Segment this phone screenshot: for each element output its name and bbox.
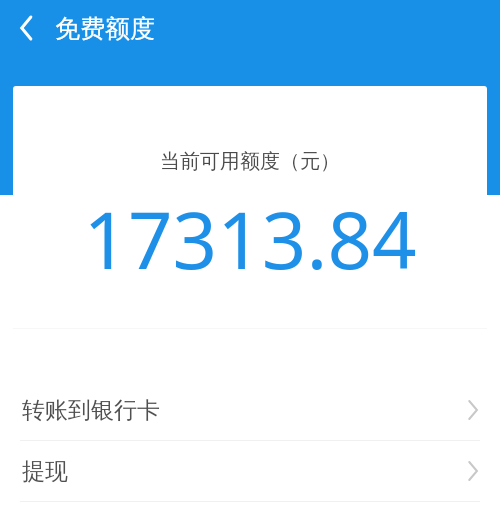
staticText: 免费额度 [55,13,155,44]
staticText: 提现 [22,457,68,486]
staticText: 17313.84 [83,186,417,292]
button[interactable]: 提现 [0,441,500,501]
staticText: 转账到银行卡 [22,396,160,425]
button[interactable]: 转账到银行卡 [0,380,500,440]
staticText: 当前可用额度（元） [160,149,340,174]
button[interactable]: Back [8,9,46,47]
